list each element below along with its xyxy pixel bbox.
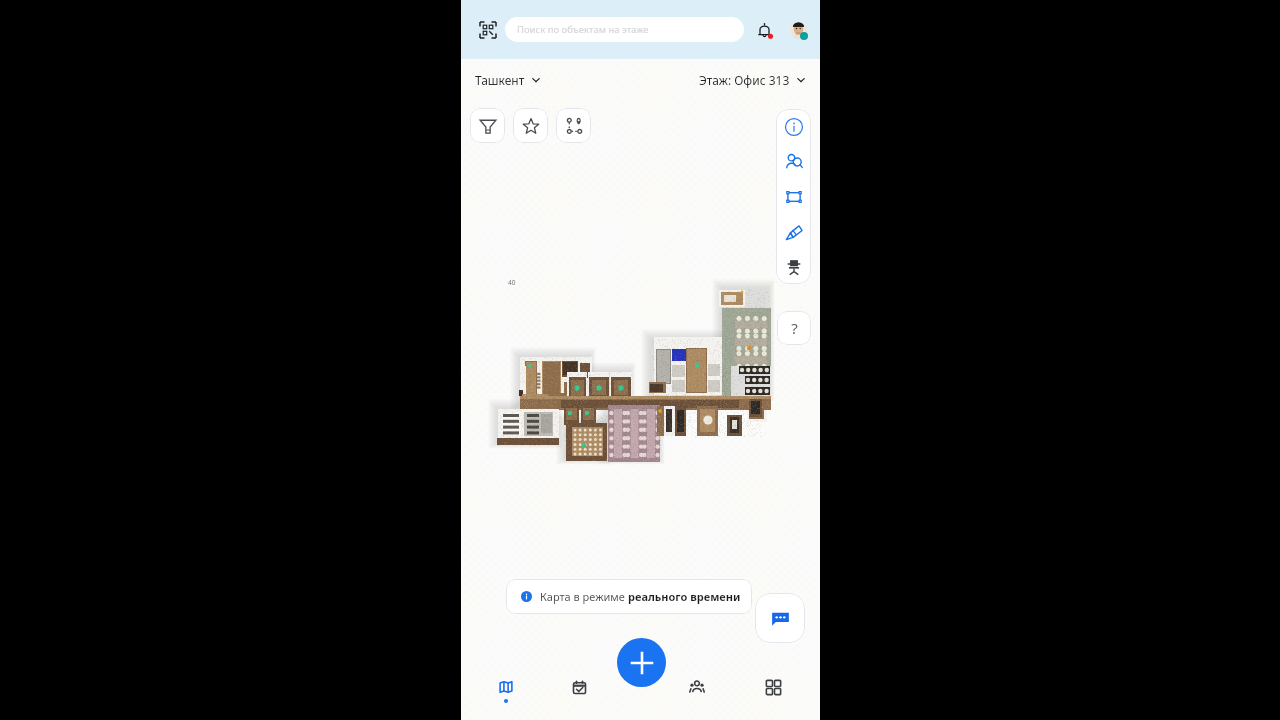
button[interactable]: Route: [556, 108, 591, 143]
staticText: 40: [508, 278, 516, 287]
button[interactable]: Этаж: Офис 313: [699, 72, 806, 88]
button[interactable]: Profile: [786, 18, 810, 42]
button[interactable]: Desk: [776, 249, 811, 284]
button[interactable]: Find person: [776, 144, 811, 179]
button[interactable]: Help: [777, 311, 811, 345]
staticText: ?: [791, 318, 798, 338]
button[interactable]: Filter: [470, 108, 505, 143]
staticText: Этаж: Офис 313: [699, 72, 790, 88]
button[interactable]: Chat: [755, 593, 805, 643]
button[interactable]: Map: [488, 678, 524, 712]
button[interactable]: Поиск по объектам на этаже: [505, 17, 744, 42]
button[interactable]: Ташкент: [475, 72, 541, 88]
button[interactable]: Карта в режиме: [506, 579, 752, 614]
button[interactable]: Highlighter: [776, 214, 811, 249]
button[interactable]: Apps: [755, 678, 791, 712]
button[interactable]: Calendar: [561, 678, 597, 712]
button[interactable]: People: [679, 678, 715, 712]
button[interactable]: Select area: [776, 179, 811, 214]
button[interactable]: Notifications: [754, 20, 774, 40]
button[interactable]: Info: [776, 109, 811, 144]
staticText: реального времени: [628, 589, 741, 604]
staticText: Карта в режиме: [540, 589, 628, 604]
staticText: Поиск по объектам на этаже: [517, 23, 649, 36]
button[interactable]: Add: [617, 638, 666, 687]
button[interactable]: Favorites: [513, 108, 548, 143]
staticText: Ташкент: [475, 72, 525, 88]
button[interactable]: Scan QR: [475, 17, 501, 43]
